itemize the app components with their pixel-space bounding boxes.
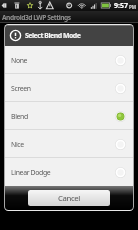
staticText: Cancel xyxy=(58,193,80,204)
staticText: Nice xyxy=(11,140,24,149)
button[interactable]: Cancel xyxy=(28,190,110,206)
staticText: PM xyxy=(129,4,137,10)
staticText: Linear Dodge xyxy=(11,168,51,177)
staticText: Android3d LWP Settings xyxy=(2,13,71,22)
staticText: 9:57 xyxy=(114,1,128,11)
button[interactable]: Nice xyxy=(5,130,133,158)
staticText: Select Blend Mode xyxy=(25,31,81,40)
button[interactable]: None xyxy=(5,46,133,74)
staticText: None xyxy=(11,56,28,65)
staticText: Blend xyxy=(11,112,28,121)
button[interactable]: Screen xyxy=(5,74,133,102)
button[interactable]: Blend xyxy=(5,102,133,130)
staticText: Screen xyxy=(11,84,31,93)
button[interactable]: Linear Dodge xyxy=(5,158,133,186)
